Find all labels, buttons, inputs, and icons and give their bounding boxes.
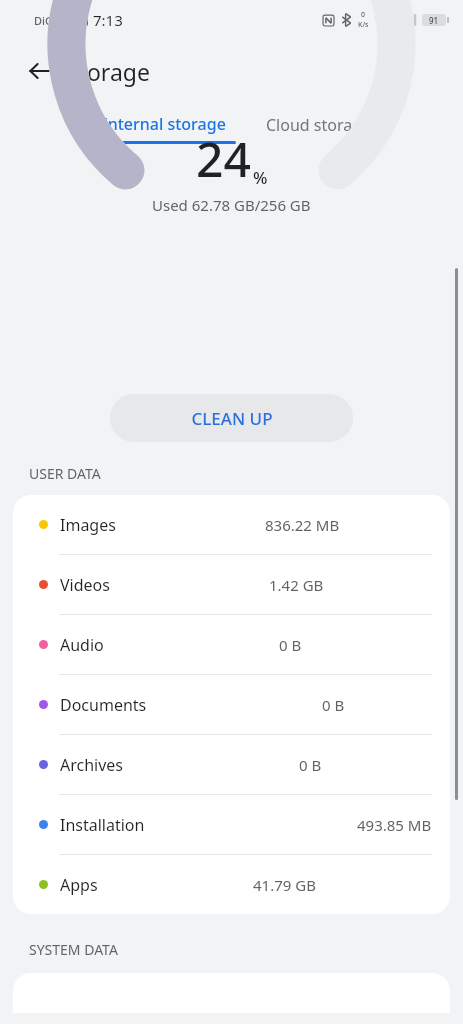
staticText: 24 [196,126,251,191]
button[interactable]: Videos [13,555,450,614]
staticText: 0 B [299,755,322,775]
staticText: Documents [60,694,147,716]
staticText: 0 B [322,695,345,715]
staticText: DiGi [34,13,56,28]
button[interactable]: Archives [13,735,450,794]
staticText: Videos [60,574,110,596]
staticText: 836.22 MB [265,515,340,535]
staticText: Images [60,514,116,536]
button[interactable]: Apps [13,855,450,914]
staticText: Cloud storage [266,114,372,136]
staticText: Used 62.78 GB/256 GB [152,195,311,215]
staticText: 41.79 GB [253,875,316,895]
button[interactable]: Images [13,495,450,554]
button[interactable]: Cloud storage [262,118,376,140]
button[interactable]: Audio [13,615,450,674]
staticText: 1.42 GB [269,575,324,595]
staticText: K/s [358,20,369,30]
staticText: 91 [429,15,439,26]
staticText: % [253,166,268,189]
staticText: 7:13 [93,10,123,30]
staticText: 0 B [279,635,302,655]
staticText: CLEAN UP [191,407,273,430]
staticText: Audio [60,634,104,656]
button[interactable]: Installation packages [13,795,450,854]
button[interactable]: Internal storage [88,113,240,144]
button[interactable]: Documents [13,675,450,734]
staticText: Storage [66,56,150,87]
staticText: SYSTEM DATA [29,940,118,959]
staticText: Internal storage [102,113,226,135]
staticText: 493.85 MB [357,815,432,835]
button[interactable]: CLEAN UP [110,394,353,442]
button[interactable]: Back [18,49,62,93]
staticText: Apps [60,874,98,896]
staticText: USER DATA [29,464,101,483]
staticText: 0 [361,10,366,20]
staticText: Installation packages [60,814,208,836]
staticText: Archives [60,754,124,776]
